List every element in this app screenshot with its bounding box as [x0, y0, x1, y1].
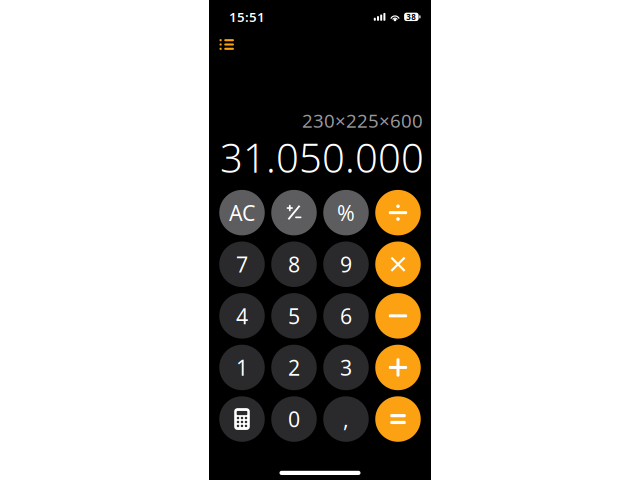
staticText: 15:51 [229, 8, 265, 26]
button[interactable]: 8 [271, 241, 317, 287]
staticText: 1 [236, 353, 248, 382]
button[interactable]: 9 [323, 241, 369, 287]
staticText: 230×225×600 [302, 108, 423, 133]
button[interactable]: 2 [271, 345, 317, 390]
staticText: , [343, 405, 349, 433]
button[interactable]: Equals [375, 396, 421, 442]
staticText: AC [229, 198, 255, 227]
button[interactable]: AC [219, 190, 265, 235]
button[interactable]: 7 [219, 241, 265, 287]
staticText: 6 [340, 302, 352, 330]
staticText: 4 [236, 302, 248, 330]
button[interactable]: Multiply [375, 241, 421, 287]
staticText: 2 [288, 353, 300, 382]
button[interactable]: Divide [375, 190, 421, 235]
staticText: 31.050.000 [220, 131, 424, 184]
staticText: 8 [288, 250, 300, 278]
button[interactable]: Plus minus [271, 190, 317, 235]
staticText: 9 [340, 250, 352, 278]
staticText: 0 [288, 405, 300, 433]
button[interactable]: 3 [323, 345, 369, 390]
staticText: 5 [288, 302, 300, 330]
button[interactable]: 6 [323, 293, 369, 339]
staticText: 38 [406, 11, 416, 22]
button[interactable]: 5 [271, 293, 317, 339]
button[interactable]: 1 [219, 345, 265, 390]
button[interactable]: % [323, 190, 369, 235]
staticText: 3 [340, 353, 352, 382]
staticText: 7 [236, 250, 248, 278]
button[interactable]: 0 [271, 396, 317, 442]
button[interactable]: , [323, 396, 369, 442]
button[interactable]: History [214, 33, 239, 56]
staticText: % [337, 198, 355, 227]
button[interactable]: 4 [219, 293, 265, 339]
button[interactable]: Add [375, 345, 421, 390]
button[interactable]: Subtract [375, 293, 421, 339]
button[interactable]: Calculator mode [219, 396, 265, 442]
